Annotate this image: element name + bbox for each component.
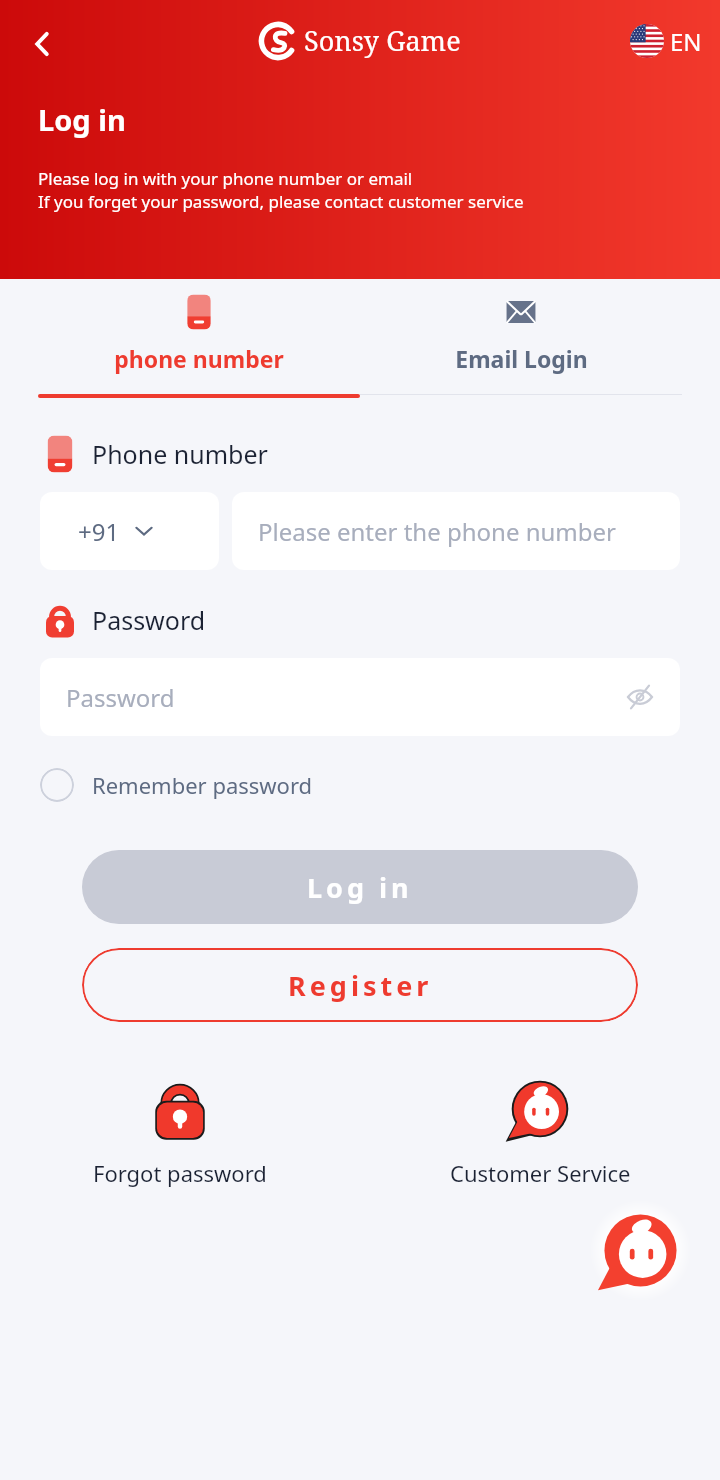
staticText: Phone number <box>92 437 268 471</box>
button[interactable]: Register <box>82 948 638 1022</box>
button[interactable]: Password <box>40 658 680 736</box>
staticText: Log in <box>38 100 126 139</box>
button[interactable]: Remember password <box>40 764 313 806</box>
staticText: Email Login <box>455 343 588 374</box>
staticText: Remember password <box>92 770 313 800</box>
staticText: EN <box>670 25 702 58</box>
staticText: Register <box>288 967 433 1004</box>
button[interactable]: Forgot password <box>0 1076 360 1188</box>
button[interactable]: phone number <box>38 285 360 382</box>
staticText: phone number <box>114 343 284 374</box>
button[interactable]: Back <box>14 16 70 72</box>
button[interactable]: EN <box>626 20 706 62</box>
staticText: If you forget your password, please cont… <box>38 190 524 213</box>
staticText: Forgot password <box>93 1158 267 1188</box>
button[interactable]: Please enter the phone number <box>232 492 680 570</box>
staticText: Password <box>66 681 614 714</box>
staticText: Password <box>92 603 206 637</box>
button[interactable]: Log in <box>82 850 638 924</box>
button[interactable]: Email Login <box>360 285 682 382</box>
staticText: Please enter the phone number <box>258 515 617 548</box>
staticText: +91 <box>78 515 120 548</box>
button[interactable]: Customer Service <box>360 1076 720 1188</box>
staticText: Please log in with your phone number or … <box>38 167 413 190</box>
staticText: Sonsy Game <box>304 22 461 59</box>
button[interactable]: +91 <box>40 492 219 570</box>
staticText: Log in <box>307 869 413 906</box>
button[interactable]: Show password <box>614 671 666 723</box>
button[interactable]: Customer Service chat <box>589 1199 692 1302</box>
staticText: Customer Service <box>450 1158 631 1188</box>
